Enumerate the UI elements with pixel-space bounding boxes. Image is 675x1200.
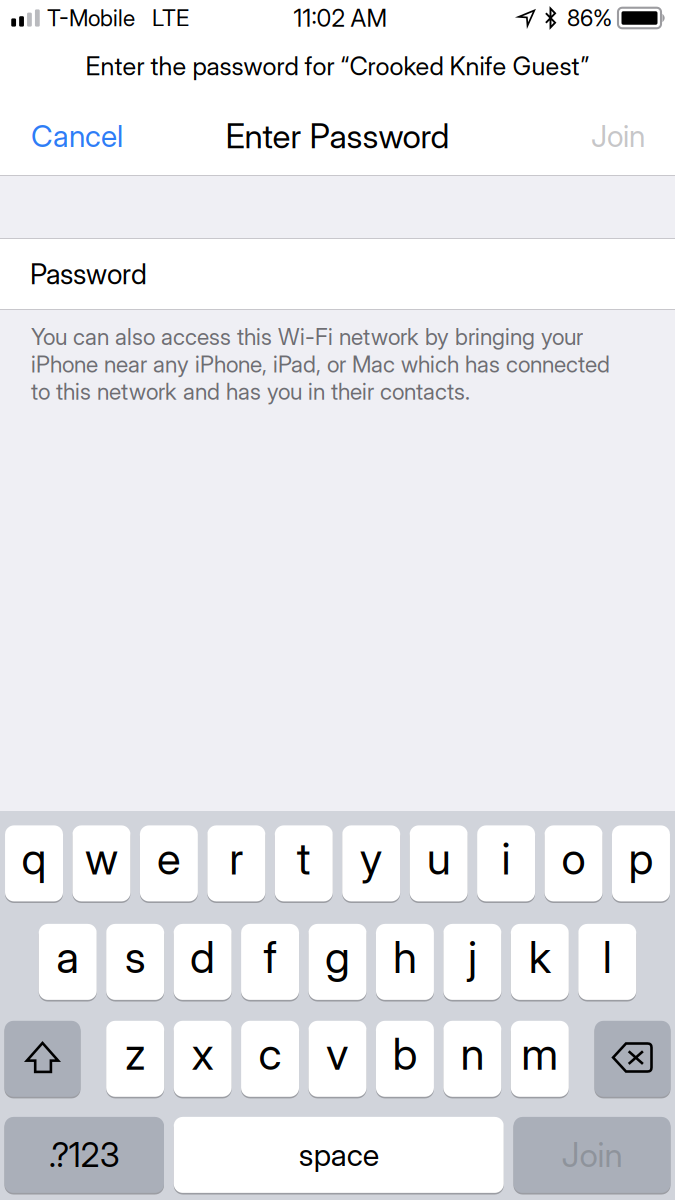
button[interactable]: w	[72, 825, 130, 903]
button[interactable]: j	[443, 924, 501, 1002]
button[interactable]: q	[5, 825, 63, 903]
staticText: k	[529, 930, 551, 983]
staticText: z	[125, 1027, 146, 1080]
staticText: u	[427, 832, 451, 885]
staticText: 11:02 AM	[293, 3, 387, 32]
staticText: q	[21, 832, 46, 885]
button[interactable]: z	[106, 1021, 164, 1099]
button[interactable]: Join	[575, 96, 675, 176]
staticText: .?123	[49, 1135, 120, 1175]
staticText: i	[502, 832, 511, 885]
button[interactable]: h	[376, 924, 434, 1002]
staticText: You can also access this Wi-Fi network b…	[31, 323, 610, 405]
button[interactable]: d	[174, 924, 232, 1002]
staticText: v	[326, 1027, 349, 1080]
button[interactable]: e	[140, 825, 198, 903]
staticText: j	[468, 930, 477, 983]
button[interactable]: y	[342, 825, 400, 903]
staticText: 86%	[567, 4, 612, 32]
staticText: Enter the password for “Crooked Knife Gu…	[85, 51, 589, 81]
button[interactable]: t	[275, 825, 333, 903]
button[interactable]: c	[241, 1021, 299, 1099]
staticText: g	[325, 930, 350, 983]
button[interactable]: g	[308, 924, 366, 1002]
button[interactable]: s	[106, 924, 164, 1002]
staticText: s	[125, 930, 146, 983]
button[interactable]: Join	[513, 1117, 670, 1195]
staticText: a	[56, 930, 79, 983]
staticText: d	[190, 930, 215, 983]
staticText: f	[264, 930, 277, 983]
button[interactable]: a	[39, 924, 97, 1002]
staticText: space	[299, 1136, 379, 1173]
staticText: x	[192, 1027, 214, 1080]
staticText: T-Mobile	[47, 4, 135, 32]
staticText: e	[157, 832, 181, 885]
button[interactable]: n	[443, 1021, 501, 1099]
button[interactable]: r	[207, 825, 265, 903]
staticText: o	[561, 832, 585, 885]
staticText: c	[259, 1027, 282, 1080]
staticText: LTE	[152, 4, 189, 32]
staticText: w	[85, 832, 118, 885]
button[interactable]: .?123	[4, 1117, 164, 1195]
staticText: l	[603, 930, 612, 983]
staticText: n	[460, 1027, 484, 1080]
staticText: m	[521, 1027, 558, 1080]
button[interactable]: u	[410, 825, 468, 903]
button[interactable]: m	[511, 1021, 569, 1099]
staticText: t	[297, 832, 311, 885]
staticText: b	[392, 1027, 417, 1080]
staticText: Join	[591, 118, 645, 154]
staticText: Cancel	[31, 118, 123, 154]
button[interactable]: space	[174, 1117, 504, 1195]
button[interactable]: v	[308, 1021, 366, 1099]
staticText: Join	[561, 1135, 622, 1175]
staticText: Enter Password	[225, 116, 449, 156]
button[interactable]: x	[174, 1021, 232, 1099]
button[interactable]: l	[578, 924, 636, 1002]
button[interactable]: p	[612, 825, 670, 903]
staticText: h	[393, 930, 417, 983]
button[interactable]: Shift	[4, 1021, 80, 1099]
staticText: p	[628, 832, 653, 885]
button[interactable]: o	[544, 825, 602, 903]
button[interactable]: f	[241, 924, 299, 1002]
staticText: Password	[30, 257, 147, 291]
button[interactable]: b	[376, 1021, 434, 1099]
button[interactable]: Cancel	[0, 96, 139, 176]
button[interactable]: i	[477, 825, 535, 903]
staticText: y	[360, 832, 383, 885]
button[interactable]: Delete	[594, 1021, 670, 1099]
button[interactable]: k	[511, 924, 569, 1002]
staticText: r	[229, 832, 243, 885]
